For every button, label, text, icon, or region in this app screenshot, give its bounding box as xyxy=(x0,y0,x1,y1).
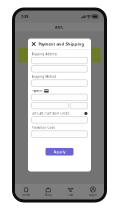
staticText: Home xyxy=(22,193,30,197)
staticText: Shipping Address xyxy=(31,52,56,56)
staticText: Login xyxy=(89,193,97,197)
button[interactable]: Login xyxy=(82,185,104,199)
staticText: Payment xyxy=(31,89,42,93)
staticText: Apply xyxy=(53,149,65,154)
button[interactable]: Payment and Shipping xyxy=(28,38,91,49)
button[interactable]: Home xyxy=(15,185,37,199)
staticText: Gift Card / Gift Store Credit xyxy=(31,112,69,115)
staticText: Payment and Shipping xyxy=(38,41,84,47)
staticText: Shipping Method xyxy=(31,75,56,78)
staticText: Promotion Code xyxy=(31,126,55,129)
staticText: 7:39 xyxy=(21,14,28,19)
button[interactable]: Cart xyxy=(59,185,82,199)
button[interactable]: Shop xyxy=(37,185,59,199)
staticText: Shop xyxy=(45,193,52,197)
staticText: ABC xyxy=(55,24,64,30)
staticText: Cart xyxy=(68,193,73,197)
button[interactable]: Apply xyxy=(45,148,73,155)
